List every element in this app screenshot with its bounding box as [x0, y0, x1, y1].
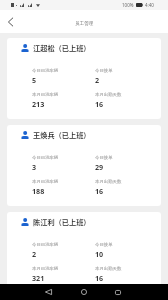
- staticText: 29: [95, 162, 104, 172]
- staticText: 今日已洗车辆: [32, 242, 59, 248]
- button[interactable]: 王焕兵（已上班）: [7, 125, 161, 206]
- staticText: 100%: [122, 2, 134, 8]
- staticText: 213: [32, 99, 45, 109]
- button[interactable]: Home: [76, 284, 92, 300]
- staticText: 今日已洗车辆: [32, 68, 59, 74]
- staticText: 321: [32, 273, 45, 283]
- button[interactable]: Recents: [110, 284, 126, 300]
- staticText: 16: [95, 99, 104, 109]
- staticText: 16: [95, 273, 104, 283]
- staticText: 今日接单: [95, 68, 113, 74]
- staticText: 5: [32, 75, 37, 85]
- button[interactable]: Back: [0, 11, 20, 33]
- staticText: 本月已洗车辆: [32, 92, 59, 98]
- staticText: 员工管理: [75, 21, 94, 27]
- button[interactable]: 陈江利（已上班）: [7, 212, 161, 293]
- staticText: 今日已洗车辆: [32, 155, 59, 161]
- staticText: 2: [95, 75, 100, 85]
- staticText: 本月已洗车辆: [32, 266, 59, 272]
- staticText: 本月已洗车辆: [32, 179, 59, 185]
- staticText: 本月出勤天数: [95, 179, 122, 185]
- button[interactable]: Back: [40, 284, 56, 300]
- staticText: 陈江利（已上班）: [33, 217, 91, 227]
- staticText: 王焕兵（已上班）: [33, 130, 91, 140]
- staticText: 4:40: [145, 2, 154, 8]
- staticText: 3: [32, 162, 37, 172]
- button[interactable]: 江超松（已上班）: [7, 38, 161, 119]
- staticText: 本月出勤天数: [95, 266, 122, 272]
- staticText: 今日接单: [95, 242, 113, 248]
- staticText: 江超松（已上班）: [33, 43, 91, 53]
- staticText: 10: [95, 249, 104, 259]
- staticText: 今日接单: [95, 155, 113, 161]
- staticText: 本月出勤天数: [95, 92, 122, 98]
- staticText: 188: [32, 186, 45, 196]
- staticText: 2: [32, 249, 37, 259]
- staticText: 16: [95, 186, 104, 196]
